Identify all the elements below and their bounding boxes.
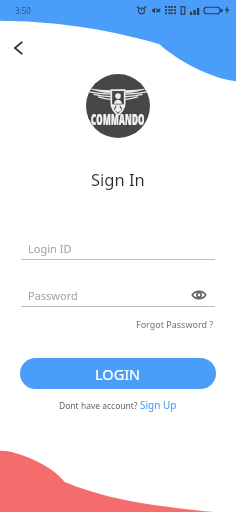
staticText: Sign Up (140, 398, 177, 412)
button[interactable]: Show password (191, 287, 207, 303)
button[interactable]: Back (3, 33, 33, 63)
staticText: Forgot Password ? (136, 318, 214, 330)
staticText: 3:50 (15, 5, 31, 16)
button[interactable]: Sign Up (140, 398, 177, 412)
staticText: Login ID (28, 241, 72, 256)
button[interactable]: Forgot Password ? (134, 316, 216, 332)
staticText: LOGIN (95, 364, 141, 384)
staticText: Password (28, 288, 78, 303)
staticText: Sign In (91, 168, 145, 190)
button[interactable]: LOGIN (20, 358, 216, 389)
staticText: Dont have account? (59, 400, 140, 412)
